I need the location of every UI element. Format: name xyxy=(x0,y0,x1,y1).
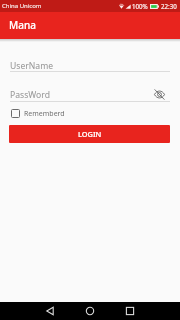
staticText: PassWord xyxy=(10,89,50,101)
button[interactable]: PassWord xyxy=(10,86,150,101)
button[interactable]: UserName xyxy=(10,57,170,71)
button[interactable]: Back xyxy=(41,302,59,320)
staticText: Rememberd xyxy=(24,109,65,119)
button[interactable]: Rememberd xyxy=(9,106,65,121)
staticText: 22:30 xyxy=(161,2,177,10)
staticText: Mana xyxy=(9,18,36,32)
button[interactable]: Home xyxy=(81,302,99,320)
staticText: 100% xyxy=(132,2,148,10)
staticText: China Unicom xyxy=(2,2,42,10)
button[interactable]: Toggle password visibility xyxy=(152,87,166,101)
button[interactable]: Recents xyxy=(121,302,139,320)
staticText: LOGIN xyxy=(78,129,102,139)
staticText: UserName xyxy=(10,60,54,72)
button[interactable]: LOGIN xyxy=(9,125,170,143)
